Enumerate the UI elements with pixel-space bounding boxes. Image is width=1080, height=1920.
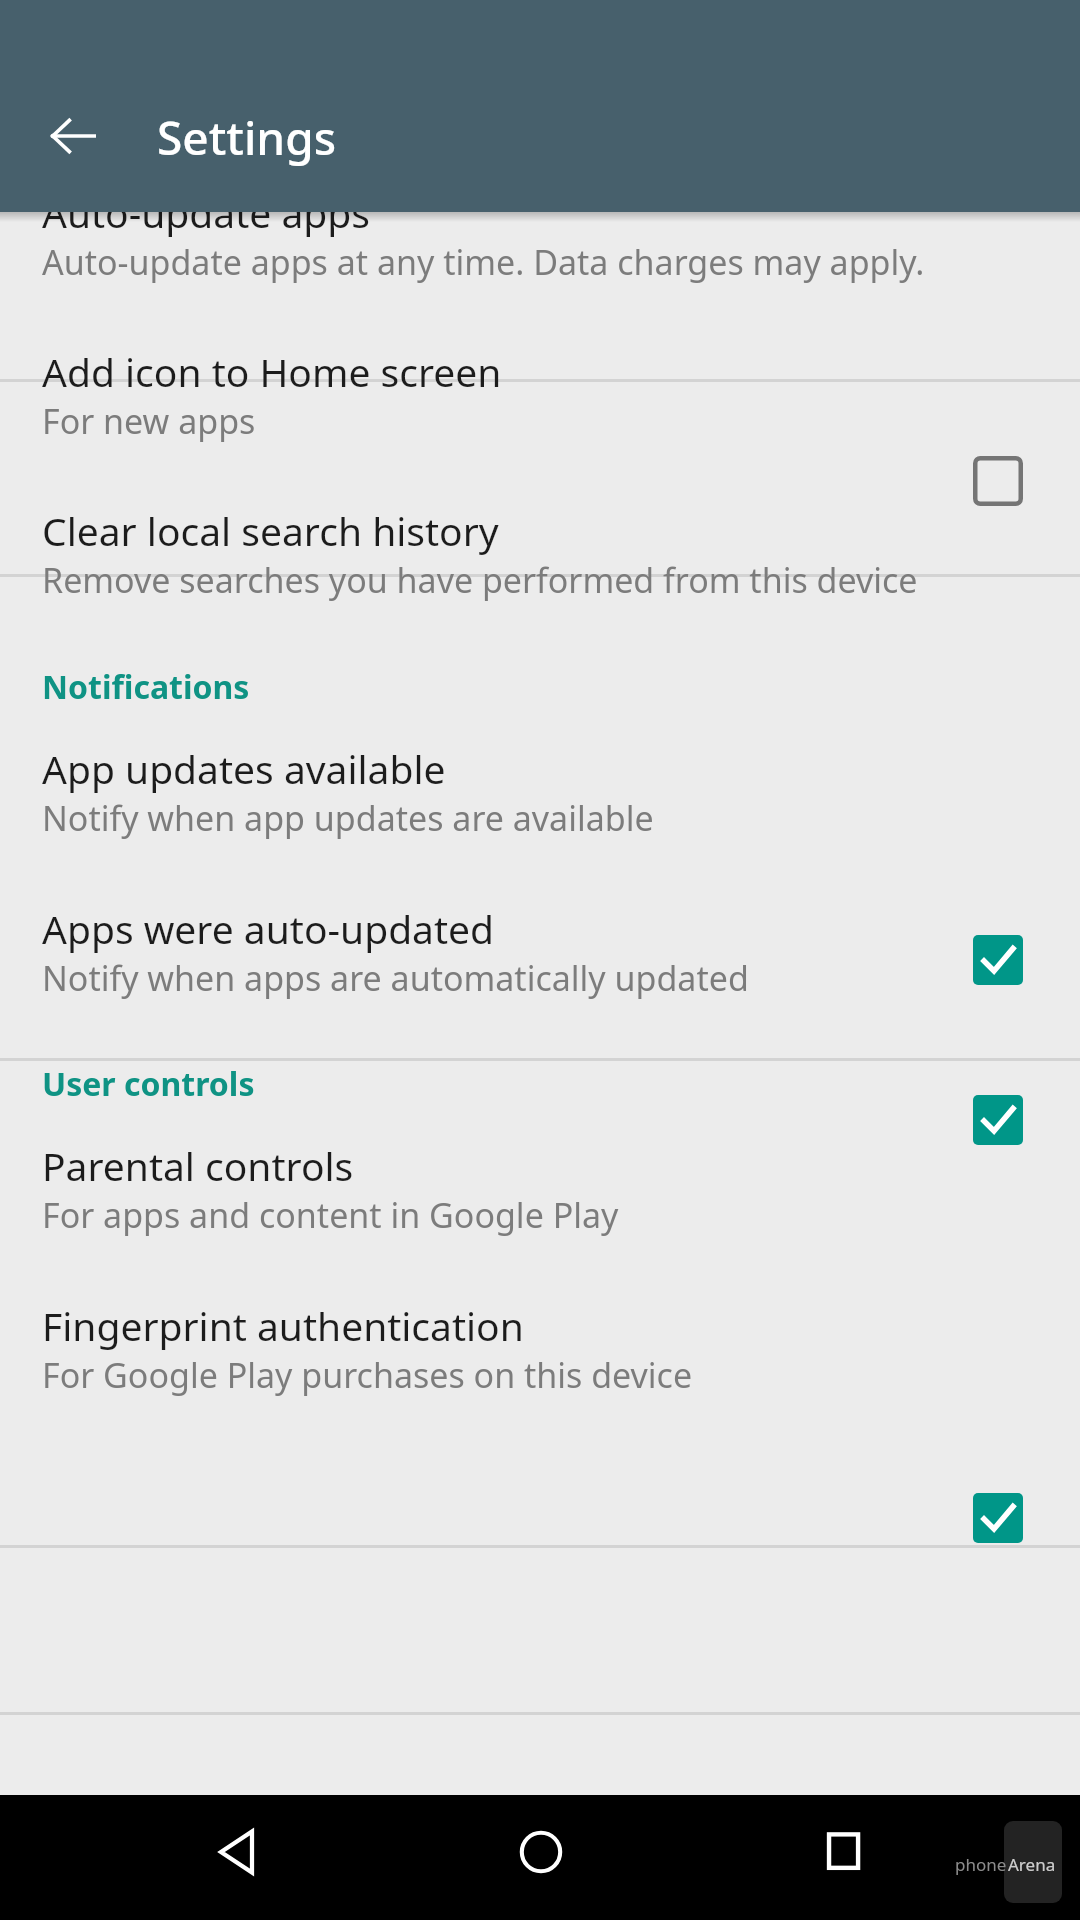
staticText: Remove searches you have performed from …	[42, 557, 918, 603]
button[interactable]: Parental controls	[0, 1103, 1080, 1235]
staticText: Notify when app updates are available	[42, 795, 654, 841]
staticText: Auto-update apps	[42, 186, 370, 239]
staticText: For apps and content in Google Play	[42, 1192, 619, 1238]
staticText: phone	[955, 1853, 1007, 1876]
staticText: App updates available	[42, 742, 446, 795]
button[interactable]: Clear local search history	[0, 468, 1080, 600]
staticText: For Google Play purchases on this device	[42, 1352, 693, 1398]
button[interactable]: Apps were auto-updated	[970, 1092, 1026, 1148]
button[interactable]: Back	[25, 88, 121, 184]
staticText: Fingerprint authentication	[42, 1299, 524, 1352]
staticText: Notifications	[42, 665, 250, 709]
button[interactable]: Fingerprint authentication	[970, 1490, 1026, 1546]
staticText: Apps were auto-updated	[42, 902, 495, 955]
button[interactable]: Apps were auto-updated	[0, 866, 1080, 998]
button[interactable]: Add icon to Home screen	[970, 453, 1026, 509]
button[interactable]: Auto-update apps	[0, 150, 1080, 282]
staticText: Auto-update apps at any time. Data charg…	[42, 239, 925, 285]
staticText: For new apps	[42, 398, 256, 444]
button[interactable]: Recent apps	[781, 1795, 906, 1920]
button[interactable]: App updates available	[0, 706, 1080, 838]
staticText: Arena	[1008, 1853, 1056, 1876]
staticText: Settings	[157, 106, 337, 169]
staticText: Clear local search history	[42, 504, 499, 557]
button[interactable]: Back	[175, 1795, 300, 1920]
staticText: Notify when apps are automatically updat…	[42, 955, 749, 1001]
button[interactable]: Home	[478, 1795, 603, 1920]
button[interactable]: Add icon to Home screen	[0, 309, 1080, 441]
staticText: Parental controls	[42, 1139, 354, 1192]
staticText: User controls	[42, 1062, 255, 1106]
button[interactable]: Fingerprint authentication	[0, 1263, 1080, 1395]
button[interactable]: App updates available	[970, 932, 1026, 988]
staticText: Add icon to Home screen	[42, 345, 502, 398]
